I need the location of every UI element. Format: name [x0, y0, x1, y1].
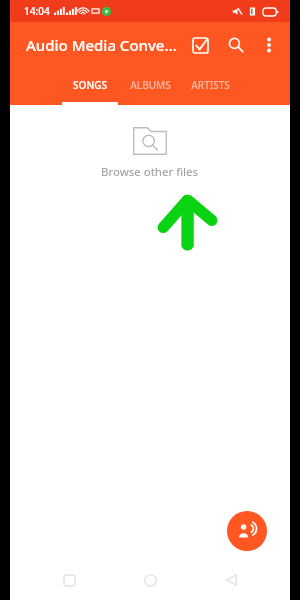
button[interactable]: ARTISTS	[180, 67, 240, 105]
button[interactable]: Search	[218, 27, 254, 63]
staticText: 14:04	[24, 4, 50, 18]
button[interactable]: Home	[128, 560, 172, 600]
staticText: Audio Media Conve...	[26, 35, 177, 55]
button[interactable]: Record voice	[227, 511, 267, 551]
button[interactable]: More options	[254, 30, 284, 60]
button[interactable]: ALBUMS	[120, 67, 180, 105]
button[interactable]: Browse other files	[101, 127, 199, 180]
staticText: SONGS	[73, 78, 107, 92]
staticText: Browse other files	[101, 164, 199, 180]
button[interactable]: Recent apps	[47, 560, 91, 600]
button[interactable]: Back	[209, 560, 253, 600]
staticText: ARTISTS	[191, 78, 230, 92]
button[interactable]: Select all	[182, 27, 218, 63]
button[interactable]: SONGS	[60, 67, 120, 105]
staticText: ALBUMS	[130, 78, 171, 92]
